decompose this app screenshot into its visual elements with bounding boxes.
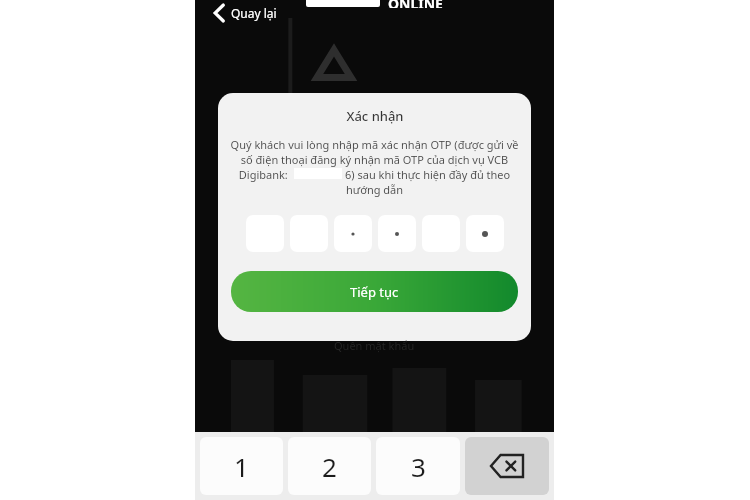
- staticText: 1: [234, 449, 249, 484]
- button[interactable]: Tiếp tục: [231, 271, 518, 312]
- staticText: ONLINE: [388, 0, 443, 8]
- button[interactable]: 3: [376, 437, 460, 495]
- button[interactable]: [378, 215, 416, 252]
- button[interactable]: 2: [288, 437, 371, 495]
- staticText: Quay lại: [231, 5, 277, 21]
- other: Back: [214, 5, 225, 21]
- staticText: Quên mật khẩu: [334, 338, 415, 353]
- staticText: Tiếp tục: [350, 283, 399, 301]
- button[interactable]: [466, 215, 504, 252]
- staticText: Quý khách vui lòng nhập mã xác nhận OTP …: [230, 137, 519, 197]
- button[interactable]: Back: [210, 2, 281, 24]
- button[interactable]: 1: [200, 437, 283, 495]
- button[interactable]: Backspace: [465, 437, 549, 495]
- staticText: 2: [322, 449, 337, 484]
- button[interactable]: [334, 215, 372, 252]
- staticText: 3: [411, 449, 426, 484]
- staticText: Xác nhận: [346, 107, 404, 125]
